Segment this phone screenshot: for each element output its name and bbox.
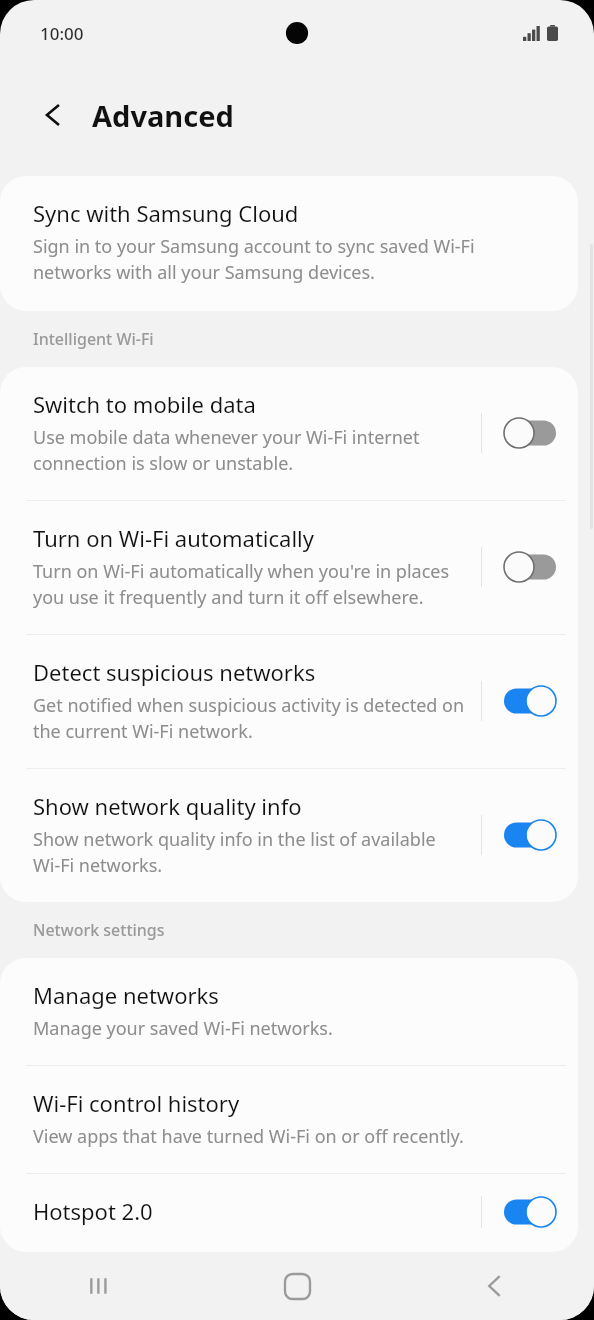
staticText: Advanced: [92, 96, 234, 135]
button[interactable]: Switch to mobile data: [0, 367, 578, 500]
button[interactable]: Recents: [0, 1252, 198, 1320]
button[interactable]: Show network quality info: [504, 820, 556, 850]
button[interactable]: Show network quality info: [0, 769, 578, 902]
button[interactable]: Switch to mobile data: [504, 418, 556, 448]
button[interactable]: Turn on Wi-Fi automatically: [0, 501, 578, 634]
staticText: Sync with Samsung Cloud: [33, 198, 299, 228]
staticText: Get notified when suspicious activity is…: [33, 693, 465, 744]
staticText: Hotspot 2.0: [33, 1196, 153, 1226]
button[interactable]: Hotspot 2.0: [504, 1197, 556, 1227]
staticText: Intelligent Wi-Fi: [33, 328, 154, 350]
staticText: 10:00: [40, 22, 84, 45]
staticText: Show network quality info in the list of…: [33, 827, 465, 878]
button[interactable]: Back: [32, 93, 76, 137]
staticText: Detect suspicious networks: [33, 657, 316, 687]
button[interactable]: Manage networks: [0, 958, 578, 1065]
staticText: Switch to mobile data: [33, 389, 256, 419]
button[interactable]: Turn on Wi-Fi automatically: [504, 552, 556, 582]
button[interactable]: Wi-Fi control history: [0, 1066, 578, 1173]
staticText: Turn on Wi-Fi automatically when you're …: [33, 559, 465, 610]
button[interactable]: Home: [198, 1252, 396, 1320]
button[interactable]: Detect suspicious networks: [504, 686, 556, 716]
button[interactable]: Hotspot 2.0: [0, 1174, 578, 1252]
staticText: Show network quality info: [33, 791, 302, 821]
staticText: Manage your saved Wi-Fi networks.: [33, 1016, 333, 1041]
staticText: Use mobile data whenever your Wi-Fi inte…: [33, 425, 465, 476]
staticText: View apps that have turned Wi-Fi on or o…: [33, 1124, 464, 1149]
staticText: Manage networks: [33, 980, 219, 1010]
button[interactable]: Detect suspicious networks: [0, 635, 578, 768]
button[interactable]: Sync with Samsung Cloud: [0, 176, 578, 311]
staticText: Turn on Wi-Fi automatically: [33, 523, 314, 553]
staticText: Network settings: [33, 919, 165, 941]
staticText: Wi-Fi control history: [33, 1088, 240, 1118]
staticText: Sign in to your Samsung account to sync …: [33, 234, 548, 285]
button[interactable]: Back: [396, 1252, 594, 1320]
